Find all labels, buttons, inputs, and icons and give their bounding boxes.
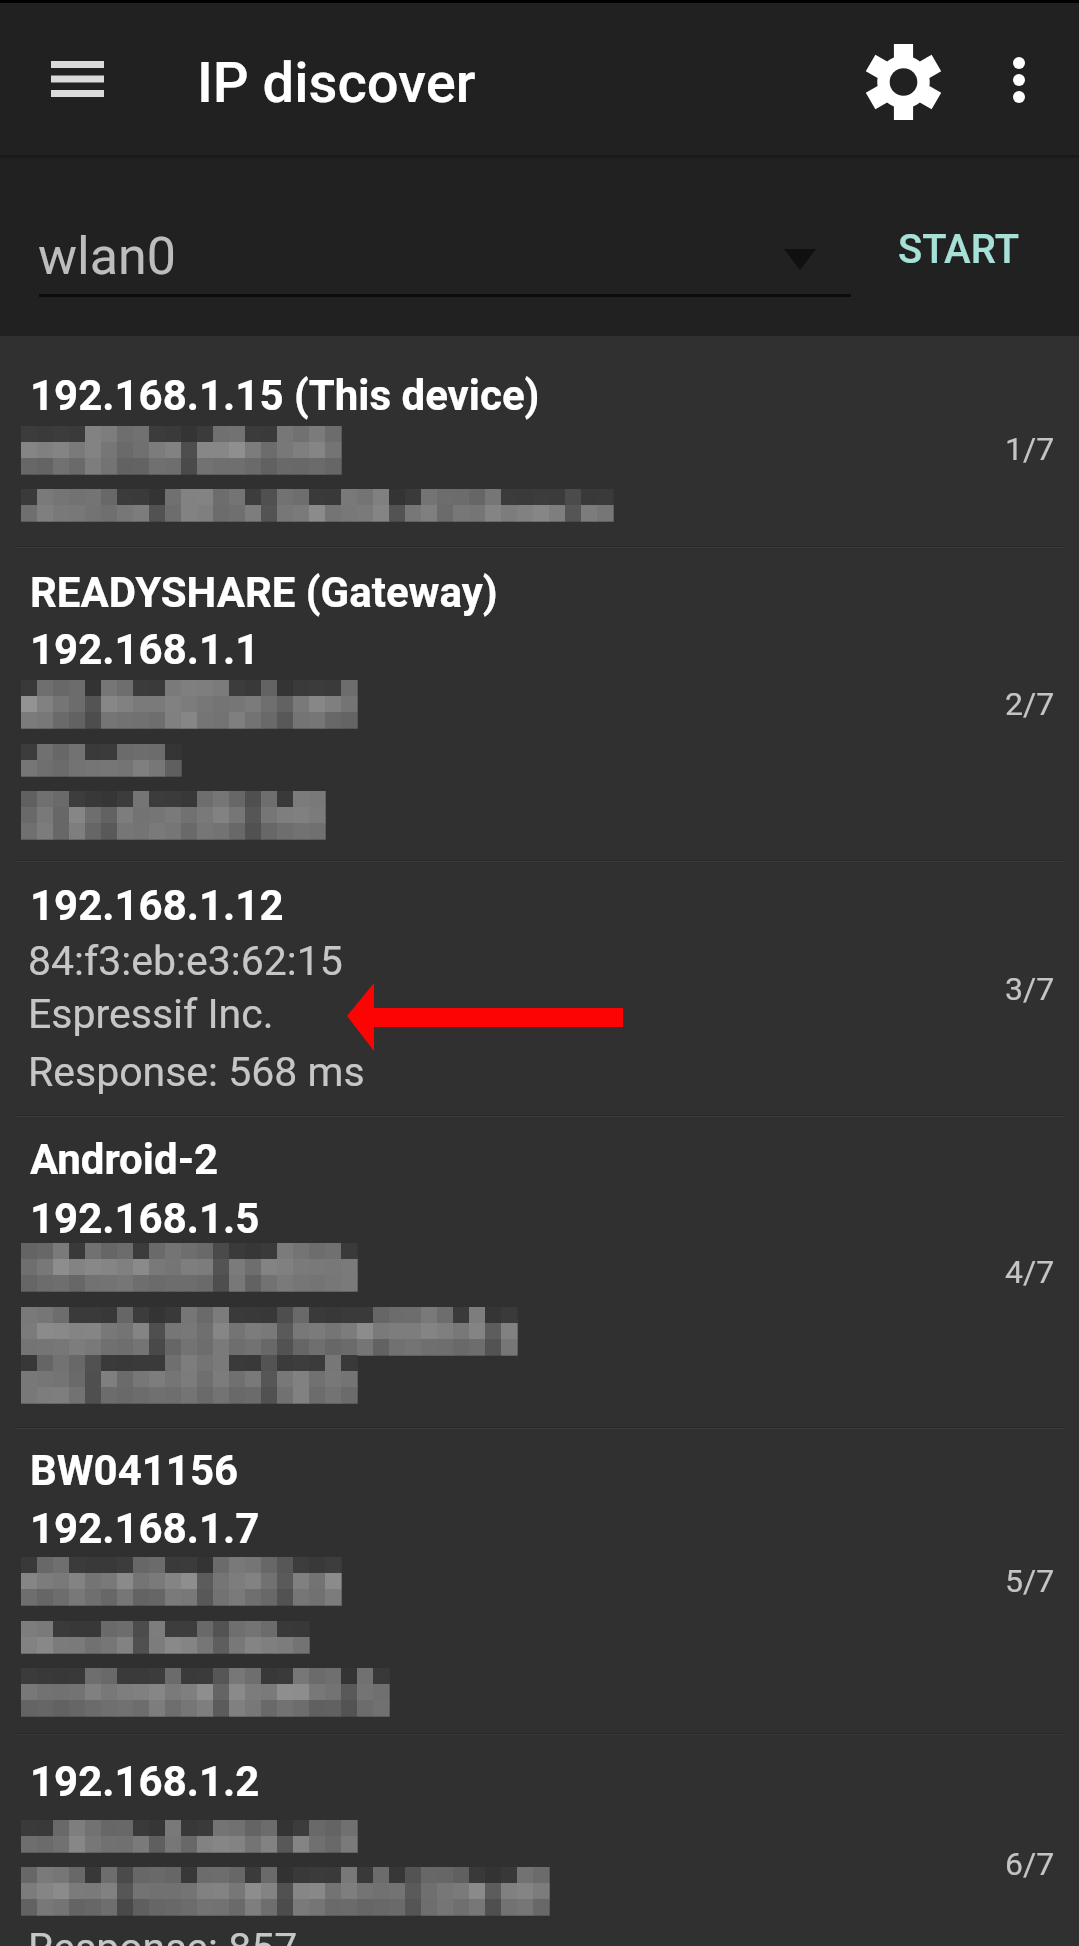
staticText: START <box>898 226 1020 273</box>
button[interactable]: 192.168.1.15 (This device) <box>0 336 1079 546</box>
staticText: 192.168.1.5 <box>30 1194 260 1243</box>
staticText: IP discover <box>197 50 476 116</box>
button[interactable]: READYSHARE (Gateway) <box>0 548 1079 860</box>
staticText: Android-2 <box>30 1135 219 1184</box>
button[interactable]: Android-2 <box>0 1117 1079 1427</box>
staticText: 2/7 <box>1005 685 1055 723</box>
staticText: 1/7 <box>1005 430 1055 468</box>
staticText: 3/7 <box>1005 970 1055 1008</box>
staticText: Response: 568 ms <box>28 1048 365 1096</box>
staticText: Response: 857 <box>28 1924 298 1946</box>
staticText: 192.168.1.7 <box>30 1504 260 1553</box>
staticText: 4/7 <box>1005 1253 1055 1291</box>
button[interactable]: Navigation menu <box>12 3 142 155</box>
staticText: READYSHARE (Gateway) <box>30 568 498 617</box>
staticText: 6/7 <box>1005 1845 1055 1883</box>
staticText: 192.168.1.12 <box>30 881 284 930</box>
button[interactable]: Settings <box>833 3 973 155</box>
button[interactable]: wlan0 <box>0 158 860 336</box>
button[interactable]: BW041156 <box>0 1429 1079 1733</box>
staticText: Espressif Inc. <box>28 990 274 1038</box>
staticText: 192.168.1.15 (This device) <box>30 371 540 420</box>
staticText: wlan0 <box>38 226 176 287</box>
staticText: BW041156 <box>30 1446 239 1495</box>
staticText: 84:f3:eb:e3:62:15 <box>28 937 343 985</box>
staticText: 192.168.1.1 <box>30 625 260 674</box>
staticText: 5/7 <box>1005 1562 1055 1600</box>
button[interactable]: More options <box>971 3 1067 155</box>
button[interactable]: 192.168.1.2 <box>0 1735 1079 1946</box>
button[interactable]: START <box>860 158 1079 336</box>
staticText: 192.168.1.2 <box>30 1757 260 1806</box>
button[interactable]: 192.168.1.12 <box>0 862 1079 1115</box>
